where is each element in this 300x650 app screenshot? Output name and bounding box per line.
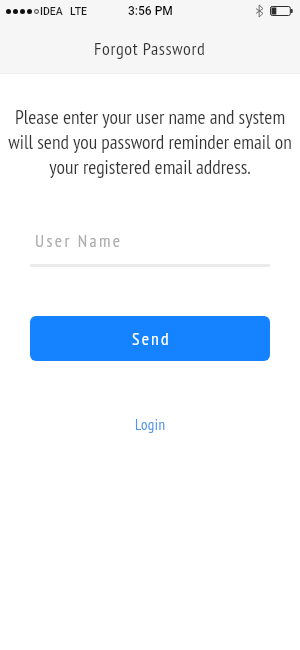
staticText: Send (132, 327, 171, 350)
staticText: Forgot Password (94, 37, 206, 60)
staticText: will send you password reminder email on (0, 129, 300, 154)
staticText: LTE (70, 5, 87, 17)
staticText: IDEA (40, 5, 63, 17)
staticText: Please enter your user name and system (0, 104, 300, 129)
other: Bluetooth (256, 5, 263, 17)
button[interactable]: Login (121, 411, 180, 438)
staticText: your registered email address. (0, 154, 300, 179)
other: Battery (270, 6, 293, 16)
staticText: 3:56 PM (128, 4, 173, 18)
button[interactable]: Send (30, 316, 270, 361)
staticText: Login (135, 415, 166, 434)
staticText: User Name (35, 229, 123, 252)
